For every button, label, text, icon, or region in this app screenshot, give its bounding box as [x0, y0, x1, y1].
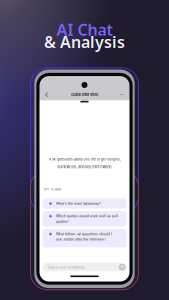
- button[interactable]: Back: [43, 92, 51, 98]
- staticText: Quine Interview: [71, 92, 98, 97]
- button[interactable]: What follow-up questions should I ask Jo…: [43, 229, 126, 247]
- button[interactable]: Which quotes would work well as pull quo…: [43, 211, 126, 226]
- button[interactable]: What's the main takeaway?: [43, 198, 126, 209]
- staticText: Which quotes would work well as pull quo…: [56, 214, 118, 223]
- staticText: Ask questions about this file to get ins…: [48, 157, 120, 169]
- staticText: Type or ask something…: [47, 265, 87, 269]
- staticText: & Analysis: [44, 31, 125, 52]
- button[interactable]: More options: [118, 92, 126, 98]
- staticText: AI Chat: [56, 19, 112, 40]
- staticText: What's the main takeaway?: [56, 201, 101, 206]
- staticText: What follow-up questions should I ask Jo…: [56, 232, 112, 241]
- staticText: TRY TO ASK:: [43, 187, 62, 191]
